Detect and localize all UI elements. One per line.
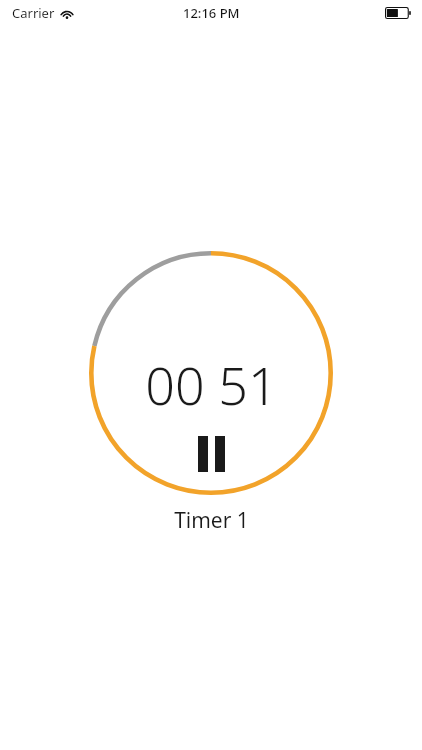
staticText: 00 51 xyxy=(145,349,278,420)
staticText: 12:16 PM xyxy=(183,4,240,22)
staticText: Timer 1 xyxy=(174,506,249,535)
button[interactable]: Timer 1 xyxy=(174,506,249,535)
staticText: Carrier xyxy=(12,4,55,22)
button[interactable]: Pause timer xyxy=(87,249,335,497)
